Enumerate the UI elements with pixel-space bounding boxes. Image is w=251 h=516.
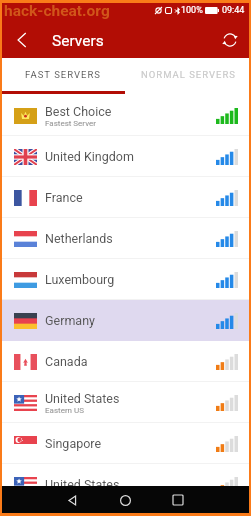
staticText: Best Choice	[45, 104, 112, 119]
button[interactable]: Singapore	[0, 423, 251, 464]
button[interactable]: FAST SERVERS	[0, 58, 125, 91]
button[interactable]: United Kingdom	[0, 136, 251, 177]
staticText: 09:44	[222, 5, 245, 16]
button[interactable]: Recents	[161, 486, 195, 514]
staticText: United States	[45, 477, 120, 492]
staticText: United Kingdom	[45, 149, 134, 164]
button[interactable]: United States	[0, 464, 251, 505]
button[interactable]: Germany	[0, 300, 251, 341]
button[interactable]: Refresh	[216, 26, 244, 54]
button[interactable]: Home	[108, 486, 142, 514]
button[interactable]: Best Choice	[0, 95, 251, 136]
staticText: Singapore	[45, 436, 102, 451]
staticText: Canada	[45, 354, 88, 369]
button[interactable]: United States	[0, 382, 251, 423]
staticText: hack-cheat.org	[4, 2, 110, 20]
staticText: Eastern US	[45, 406, 84, 415]
staticText: Luxembourg	[45, 272, 115, 287]
staticText: Fastest Server	[45, 119, 96, 128]
staticText: NORMAL SERVERS	[141, 69, 236, 80]
staticText: FAST SERVERS	[25, 69, 101, 80]
staticText: Servers	[52, 32, 104, 50]
staticText: France	[45, 190, 83, 205]
button[interactable]: Back	[55, 486, 89, 514]
staticText: United States	[45, 391, 120, 406]
staticText: Netherlands	[45, 231, 113, 246]
button[interactable]: France	[0, 177, 251, 218]
button[interactable]: Netherlands	[0, 218, 251, 259]
button[interactable]: Luxembourg	[0, 259, 251, 300]
button[interactable]: NORMAL SERVERS	[125, 58, 251, 91]
button[interactable]: Back	[8, 26, 34, 54]
button[interactable]: Canada	[0, 341, 251, 382]
staticText: Germany	[45, 313, 95, 328]
staticText: 100%	[181, 5, 203, 16]
